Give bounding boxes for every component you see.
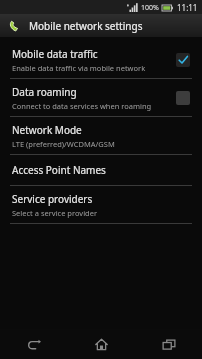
button[interactable]: Back [0, 329, 68, 359]
button[interactable]: Home [68, 329, 135, 359]
staticText: Connect to data services when roaming [12, 101, 152, 111]
button[interactable]: Data roaming [0, 79, 202, 116]
staticText: 11:11 [177, 2, 198, 13]
button[interactable]: Access Point Names [0, 155, 202, 185]
other: Phone [8, 20, 20, 32]
staticText: Access Point Names [12, 163, 106, 177]
staticText: Select a service provider [12, 208, 98, 218]
staticText: LTE (preferred)/WCDMA/GSM [12, 139, 115, 149]
staticText: 100% [141, 3, 159, 13]
button[interactable]: Mobile data traffic [0, 41, 202, 78]
staticText: Network Mode [12, 123, 82, 137]
staticText: Mobile data traffic [12, 47, 98, 61]
button[interactable]: Phone [0, 14, 202, 37]
button[interactable]: Network Mode [0, 117, 202, 154]
staticText: Service providers [12, 192, 93, 206]
button[interactable]: Checked [176, 53, 190, 67]
button[interactable]: Unchecked [176, 91, 190, 105]
staticText: Data roaming [12, 85, 77, 99]
button[interactable]: Recents [135, 329, 202, 359]
staticText: Enable data traffic via mobile network [12, 63, 146, 73]
button[interactable]: Service providers [0, 186, 202, 223]
staticText: Mobile network settings [29, 19, 143, 33]
